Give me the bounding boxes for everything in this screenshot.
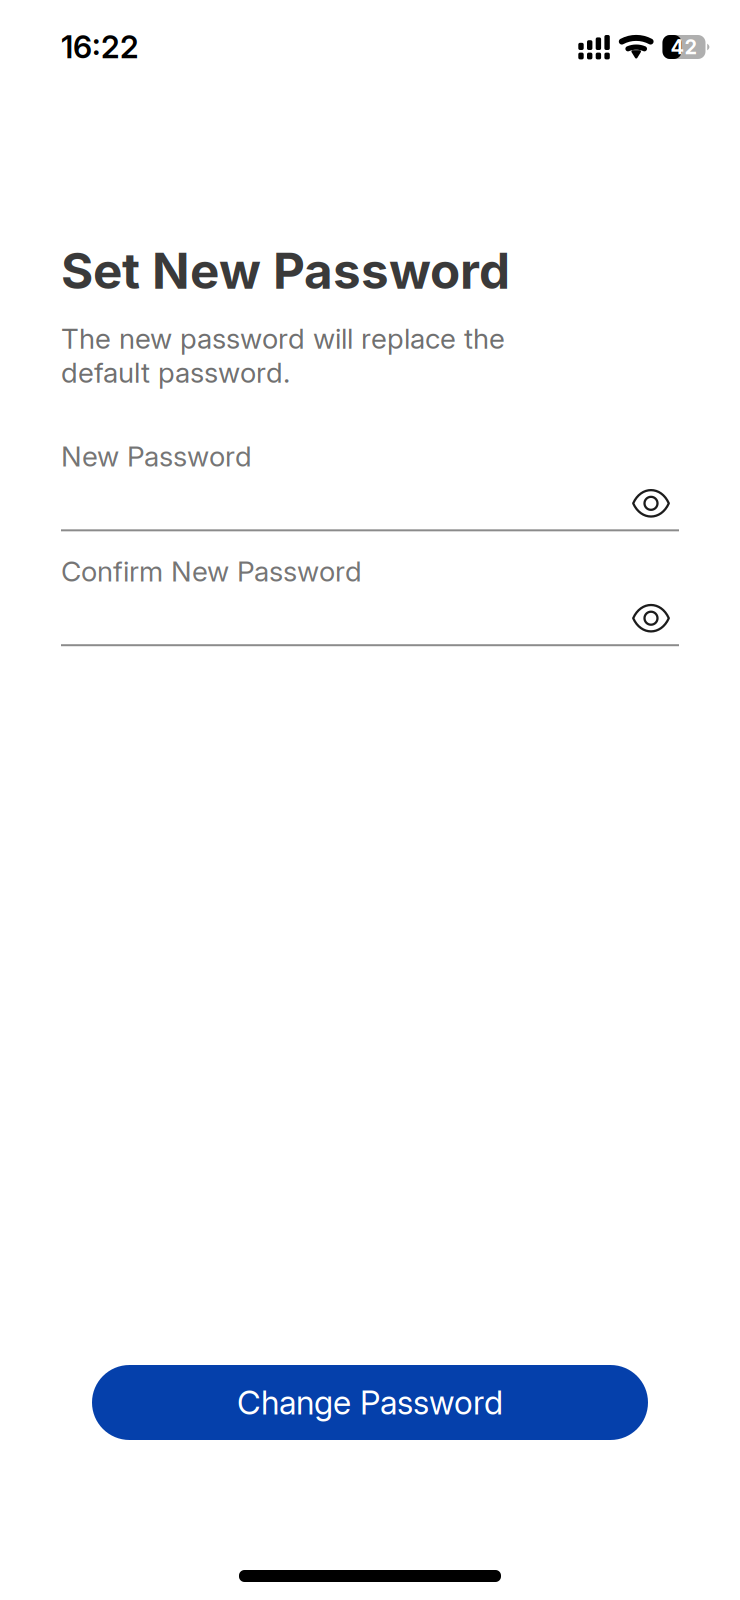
staticText: The new password will replace the defaul…: [61, 322, 505, 389]
staticText: 16:22: [61, 28, 139, 65]
staticText: Confirm New Password: [61, 554, 362, 588]
staticText: New Password: [61, 439, 252, 473]
button[interactable]: Show New Password: [614, 473, 679, 529]
button[interactable]: Show Confirm New Password: [614, 588, 679, 644]
button[interactable]: Change Password: [92, 1365, 648, 1440]
staticText: Set New Password: [61, 241, 510, 301]
staticText: 42: [670, 35, 697, 59]
staticText: Change Password: [237, 1383, 503, 1422]
